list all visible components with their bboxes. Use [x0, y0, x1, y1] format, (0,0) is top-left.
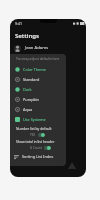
- button[interactable]: YES: [10, 131, 66, 138]
- staticText: 9:41: [15, 21, 22, 26]
- button[interactable]: Sorting List Index: [10, 151, 66, 161]
- button[interactable]: # Count: [10, 144, 66, 151]
- staticText: Use Systeme: [23, 117, 46, 122]
- staticText: Pumpkin: [23, 97, 39, 102]
- button[interactable]: Pumpkin: [10, 94, 66, 104]
- button[interactable]: Standard: [10, 74, 66, 84]
- staticText: Number list by default: [16, 126, 52, 131]
- staticText: Aqua: [23, 107, 33, 112]
- staticText: Settings: [15, 32, 39, 40]
- staticText: Show total in list header: [16, 139, 55, 144]
- button[interactable]: Aqua: [10, 104, 66, 114]
- button[interactable]: Use Systeme: [10, 114, 66, 125]
- staticText: Color Theme: [23, 67, 46, 72]
- button[interactable]: Color Theme: [10, 64, 66, 74]
- staticText: # Count: [30, 146, 42, 150]
- staticText: Sorting List Index: [22, 154, 54, 159]
- staticText: You may adjust defaults here: [16, 57, 60, 61]
- staticText: Jean Adams: [25, 45, 49, 51]
- staticText: Standard: [23, 77, 40, 82]
- other: Collapse: [68, 162, 76, 169]
- staticText: Dark: [23, 87, 32, 92]
- staticText: YES: [30, 133, 36, 137]
- button[interactable]: Jean Adams: [10, 43, 66, 53]
- button[interactable]: Dark: [10, 84, 66, 94]
